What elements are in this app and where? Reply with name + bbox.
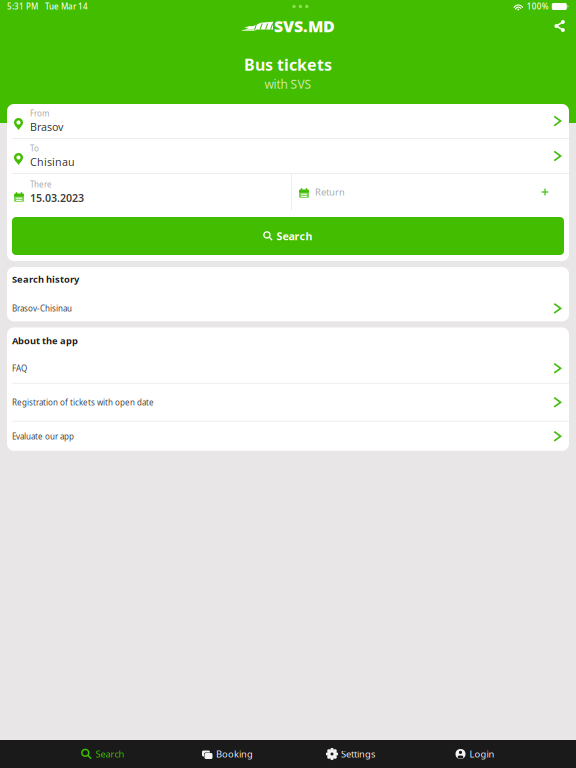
staticText: Login: [469, 748, 494, 760]
button[interactable]: Search: [12, 217, 564, 255]
staticText: Brasov: [30, 120, 63, 134]
button[interactable]: Booking: [165, 740, 289, 768]
button[interactable]: Search: [41, 740, 165, 768]
staticText: Chisinau: [30, 155, 75, 169]
staticText: Search history: [12, 273, 79, 285]
staticText: Bus tickets: [244, 54, 332, 75]
staticText: There: [30, 179, 52, 190]
staticText: with SVS: [264, 76, 311, 92]
staticText: Search: [276, 229, 312, 243]
staticText: Evaluate our app: [12, 431, 74, 442]
button[interactable]: FAQ: [7, 354, 569, 383]
button[interactable]: To: [7, 139, 569, 173]
staticText: Tue Mar 14: [45, 1, 88, 12]
button[interactable]: Brasov-Chisinau: [7, 295, 569, 321]
button[interactable]: From: [7, 104, 569, 138]
staticText: 100%: [527, 1, 549, 12]
staticText: 15.03.2023: [30, 191, 84, 205]
staticText: Registration of tickets with open date: [12, 397, 154, 408]
staticText: SVS.MD: [274, 15, 335, 37]
staticText: 5:31 PM: [7, 1, 38, 12]
staticText: Brasov-Chisinau: [12, 303, 72, 314]
button[interactable]: Settings: [289, 740, 413, 768]
staticText: Settings: [341, 748, 375, 760]
staticText: From: [30, 108, 49, 119]
staticText: FAQ: [12, 363, 27, 374]
button[interactable]: Login: [413, 740, 537, 768]
staticText: Booking: [216, 748, 253, 760]
button[interactable]: Registration of tickets with open date: [7, 384, 569, 421]
button[interactable]: Evaluate our app: [7, 422, 569, 451]
staticText: Return: [315, 186, 345, 198]
staticText: About the app: [12, 334, 78, 347]
staticText: To: [30, 143, 39, 154]
button[interactable]: Return: [291, 174, 569, 210]
button[interactable]: There: [7, 174, 291, 210]
button[interactable]: Share: [547, 13, 572, 38]
staticText: Search: [95, 748, 124, 760]
